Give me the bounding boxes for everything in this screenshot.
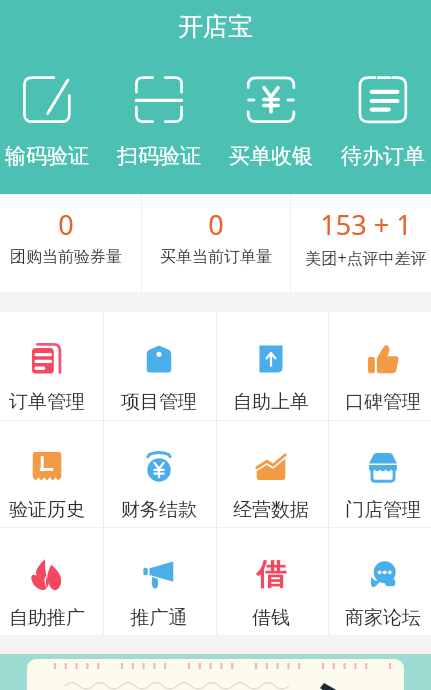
button[interactable]: 扫码验证 — [103, 0, 215, 194]
button[interactable]: 自助上单 — [215, 312, 327, 420]
staticText: 推广通 — [103, 606, 215, 630]
button[interactable]: 商家论坛 — [327, 528, 431, 635]
button[interactable]: 借 — [215, 528, 327, 635]
staticText: 口碑管理 — [327, 390, 431, 414]
button[interactable]: 153 + 1 — [291, 194, 431, 292]
staticText: 0 — [0, 206, 141, 243]
staticText: 经营数据 — [215, 498, 327, 522]
staticText: 验证历史 — [0, 498, 103, 522]
staticText: 买单收银 — [215, 143, 327, 169]
button[interactable]: 输码验证 — [0, 0, 103, 194]
staticText: 153 + 1 — [291, 206, 431, 243]
staticText: 0 — [141, 206, 291, 243]
button[interactable]: 待办订单 — [327, 0, 431, 194]
staticText: 买单当前订单量 — [141, 247, 291, 267]
staticText: 团购当前验券量 — [0, 247, 141, 267]
staticText: 商家论坛 — [327, 606, 431, 630]
staticText: 订单管理 — [0, 390, 103, 414]
staticText: 自助上单 — [215, 390, 327, 414]
button[interactable]: 财务结款 — [103, 420, 215, 528]
staticText: 扫码验证 — [103, 143, 215, 169]
staticText: 自助推广 — [0, 606, 103, 630]
button[interactable]: 0 — [0, 194, 141, 292]
staticText: 项目管理 — [103, 390, 215, 414]
staticText: 待办订单 — [327, 143, 431, 169]
staticText: 借钱 — [215, 606, 327, 630]
button[interactable]: 自助推广 — [0, 528, 103, 635]
button[interactable]: 经营数据 — [215, 420, 327, 528]
button[interactable]: 0 — [141, 194, 291, 292]
button[interactable]: 口碑管理 — [327, 312, 431, 420]
staticText: 财务结款 — [103, 498, 215, 522]
staticText: 美团+点评中差评 — [291, 247, 431, 269]
button[interactable]: 项目管理 — [103, 312, 215, 420]
staticText: 借 — [215, 556, 327, 594]
button[interactable]: 门店管理 — [327, 420, 431, 528]
button[interactable]: 订单管理 — [0, 312, 103, 420]
button[interactable]: 验证历史 — [0, 420, 103, 528]
button[interactable]: 买单收银 — [215, 0, 327, 194]
staticText: 输码验证 — [0, 143, 103, 169]
button[interactable]: 推广通 — [103, 528, 215, 635]
staticText: 开店宝 — [0, 11, 431, 42]
staticText: 门店管理 — [327, 498, 431, 522]
